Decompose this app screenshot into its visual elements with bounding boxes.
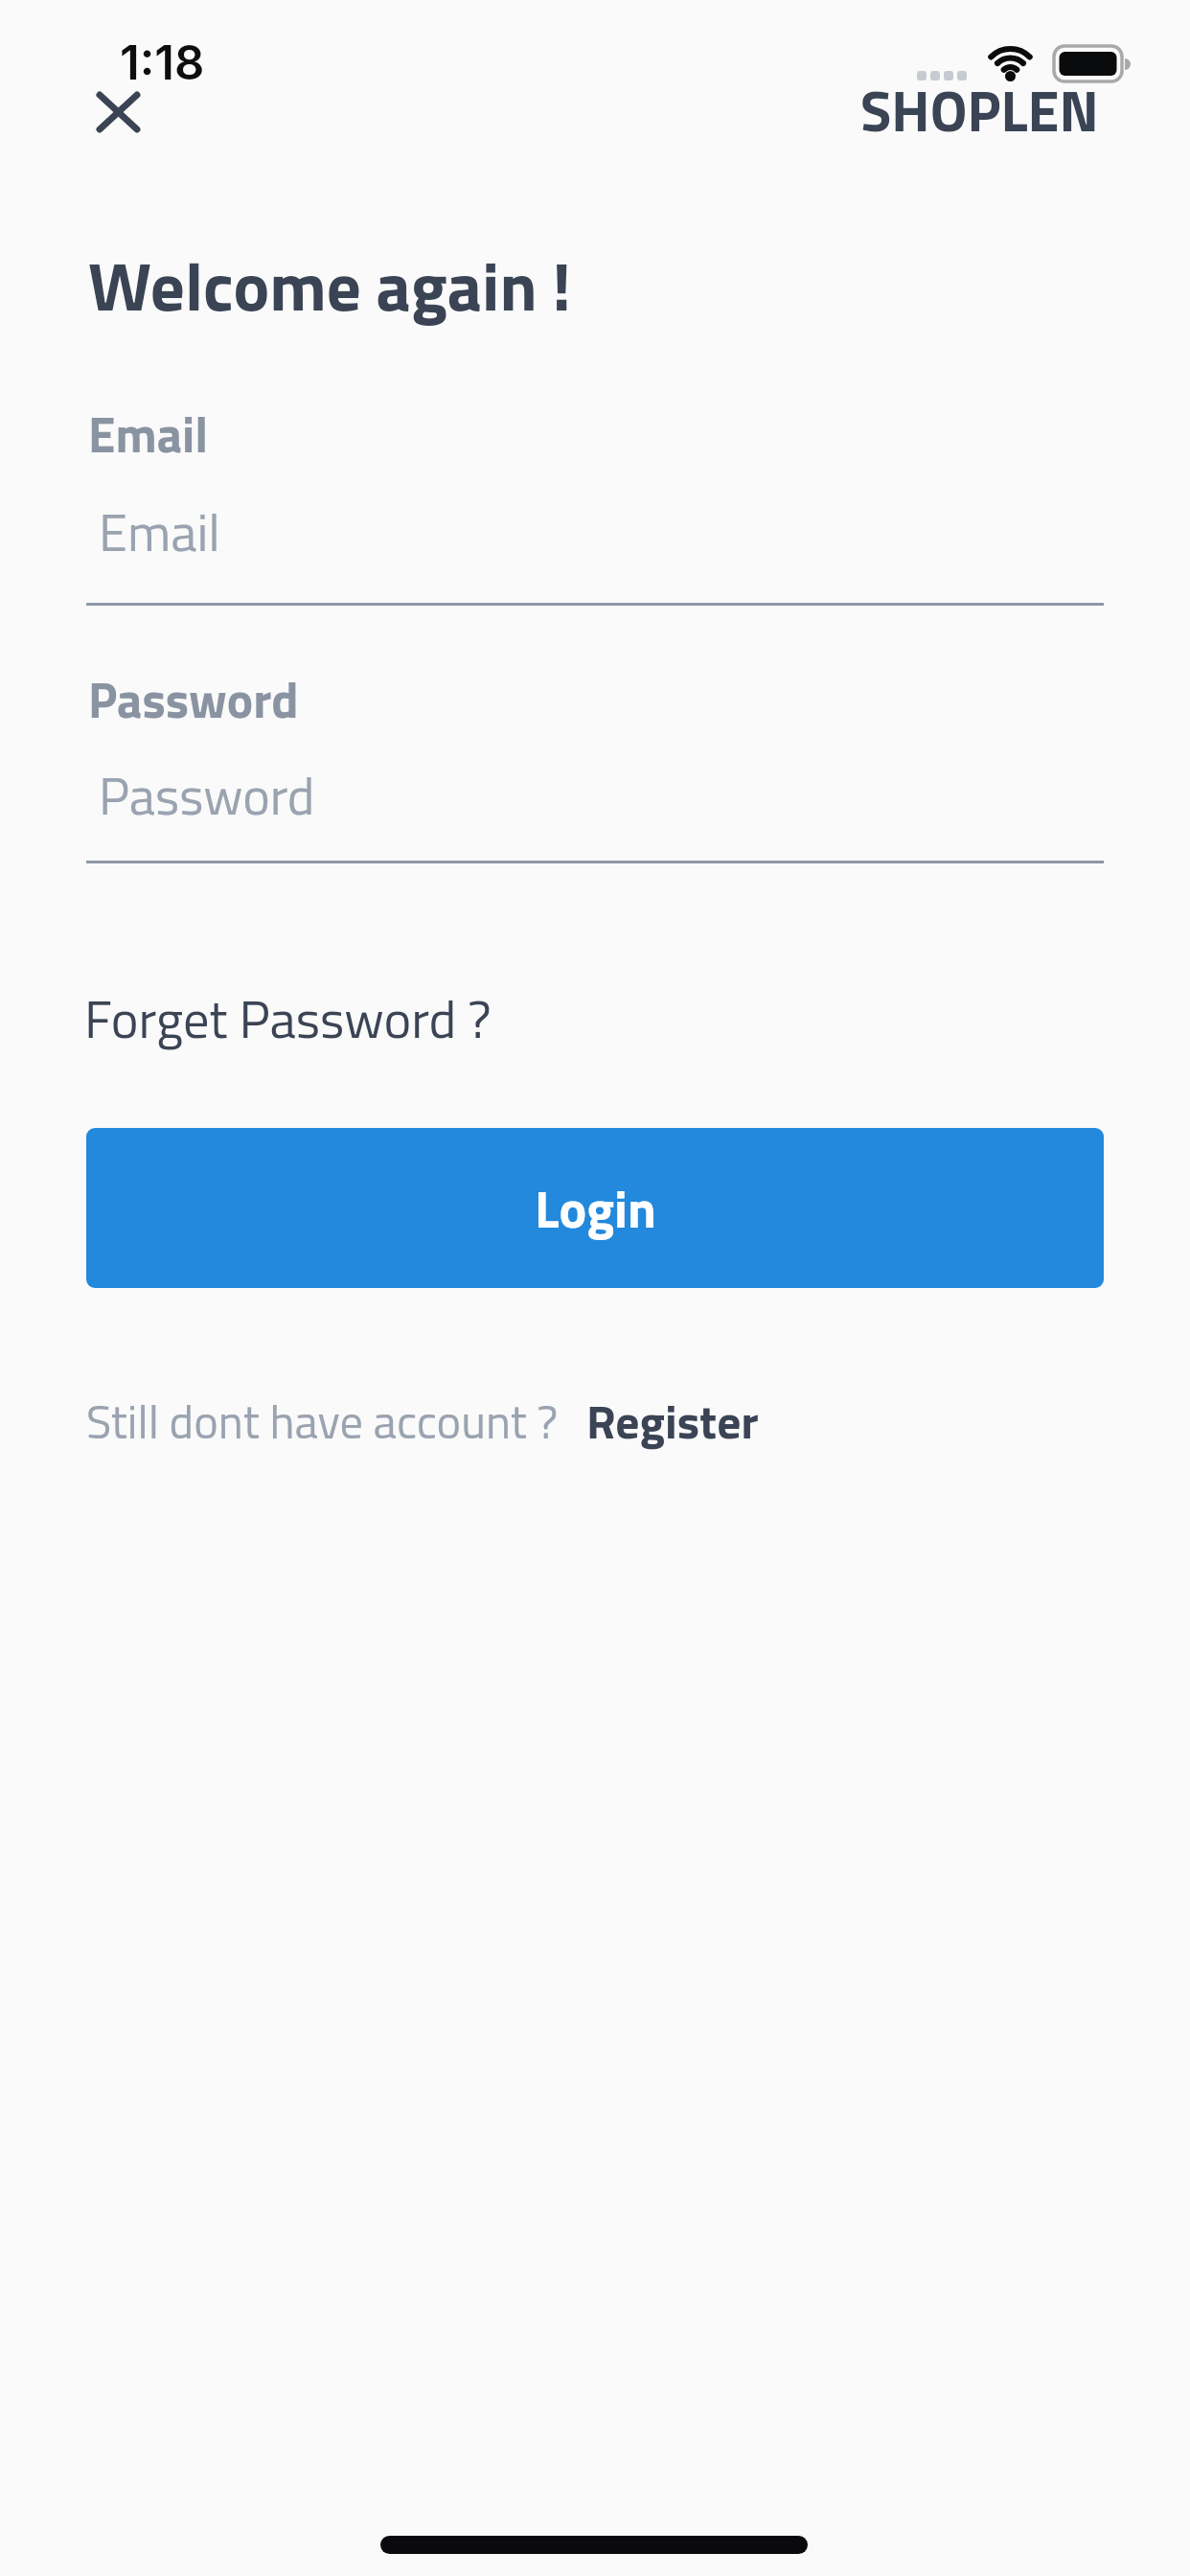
button[interactable]: Forget Password ? — [84, 978, 492, 1058]
button[interactable]: Register — [586, 1385, 759, 1457]
button[interactable]: Password — [86, 737, 1104, 863]
staticText: 1:18 — [120, 34, 205, 91]
staticText: Password — [99, 756, 315, 835]
staticText: Register — [586, 1385, 759, 1457]
staticText: Welcome again ! — [88, 234, 572, 337]
staticText: Login — [535, 1169, 656, 1248]
button[interactable]: Email — [86, 479, 1104, 606]
staticText: Email — [99, 493, 220, 571]
staticText: SHOPLEN — [860, 67, 1099, 153]
button[interactable] — [80, 75, 156, 151]
staticText: Forget Password ? — [84, 978, 492, 1058]
staticText: Password — [88, 662, 299, 737]
button[interactable]: Login — [86, 1128, 1104, 1288]
staticText: Still dont have account ? — [86, 1386, 559, 1457]
staticText: Email — [88, 397, 209, 471]
